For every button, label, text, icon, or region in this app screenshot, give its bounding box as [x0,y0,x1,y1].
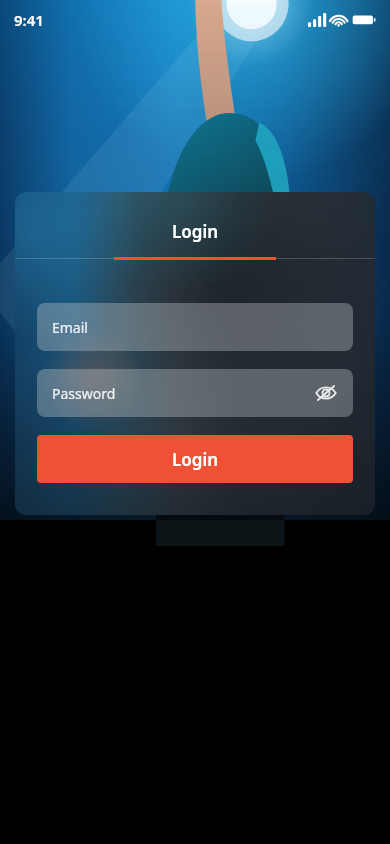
staticText: Login [15,220,375,243]
staticText: Password [52,384,116,403]
button[interactable]: Password [37,369,353,417]
staticText: 9:41 [14,10,44,30]
button[interactable]: Login [37,435,353,483]
staticText: Login [172,448,219,471]
staticText: Email [52,318,88,337]
button[interactable]: Show password [310,377,342,409]
button[interactable]: Email [37,303,353,351]
